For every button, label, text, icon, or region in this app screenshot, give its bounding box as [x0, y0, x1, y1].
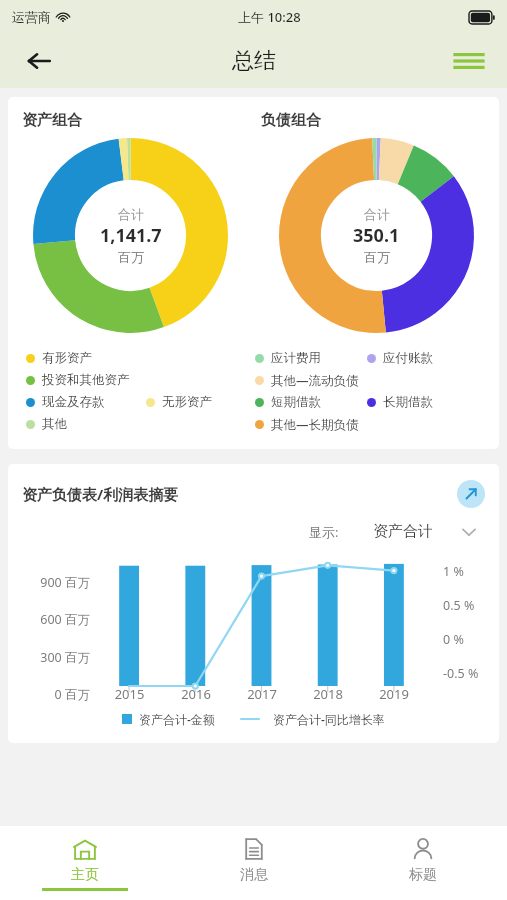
button[interactable]: 资产合计	[373, 522, 477, 541]
staticText: 无形资产	[162, 394, 212, 410]
button[interactable]: 消息	[169, 826, 338, 900]
staticText: 合计	[118, 206, 144, 222]
staticText: 600 百万	[14, 611, 90, 628]
staticText: 短期借款	[271, 394, 321, 410]
staticText: 300 百万	[14, 649, 90, 666]
staticText: 总结	[232, 47, 276, 75]
staticText: 2015	[96, 685, 163, 703]
staticText: 资产组合	[22, 111, 253, 130]
staticText: 其他	[42, 416, 67, 432]
staticText: -0.5 %	[443, 665, 479, 682]
staticText: 0 百万	[14, 686, 90, 703]
button[interactable]: Back	[18, 40, 60, 82]
staticText: 资产合计-金额	[139, 711, 215, 727]
staticText: 资产负债表/利润表摘要	[22, 484, 457, 504]
button[interactable]: Expand	[457, 480, 485, 508]
button[interactable]: 主页	[0, 826, 169, 900]
staticText: 合计	[364, 206, 390, 222]
staticText: 负债组合	[261, 111, 499, 130]
staticText: 长期借款	[383, 394, 433, 410]
staticText: 900 百万	[14, 574, 90, 591]
button[interactable]: Menu	[447, 39, 491, 83]
button[interactable]: 标题	[338, 826, 507, 900]
staticText: 百万	[118, 249, 144, 265]
staticText: 2018	[295, 685, 361, 703]
staticText: 主页	[71, 866, 99, 884]
staticText: 应计费用	[271, 350, 321, 366]
staticText: 1 %	[443, 563, 464, 580]
staticText: 2016	[163, 685, 229, 703]
staticText: 2017	[229, 685, 295, 703]
staticText: 应付账款	[383, 350, 433, 366]
staticText: 有形资产	[42, 350, 92, 366]
staticText: 标题	[409, 866, 437, 884]
staticText: 2019	[361, 685, 427, 703]
staticText: 显示:	[309, 523, 339, 541]
staticText: 现金及存款	[42, 394, 105, 410]
staticText: 其他—流动负债	[271, 372, 359, 389]
staticText: 运营商	[12, 9, 51, 25]
staticText: 百万	[364, 249, 390, 265]
staticText: 上午 10:28	[238, 8, 301, 26]
staticText: 资产合计-同比增长率	[273, 711, 385, 727]
staticText: 其他—长期负债	[271, 416, 359, 433]
staticText: 350.1	[353, 223, 400, 248]
staticText: 投资和其他资产	[42, 372, 130, 388]
staticText: 1,141.7	[100, 223, 162, 248]
staticText: 消息	[240, 866, 268, 884]
staticText: 0.5 %	[443, 597, 475, 614]
staticText: 资产合计	[373, 522, 433, 541]
staticText: 0 %	[443, 631, 464, 648]
